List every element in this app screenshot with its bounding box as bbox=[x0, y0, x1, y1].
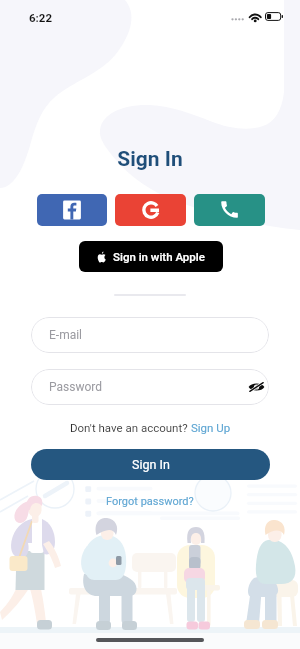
staticText: E-mail bbox=[49, 328, 83, 342]
staticText: Sign In bbox=[0, 147, 300, 172]
staticText: Sign In bbox=[132, 457, 170, 472]
staticText: 6:22 bbox=[29, 11, 53, 24]
button[interactable]: Sign Up bbox=[191, 421, 231, 434]
button[interactable]: Sign in with Apple bbox=[79, 241, 223, 272]
button[interactable]: Sign in with Facebook bbox=[37, 194, 107, 226]
staticText: Password bbox=[49, 380, 103, 394]
button[interactable]: Forgot password? bbox=[106, 495, 194, 508]
button[interactable]: Sign in with Google bbox=[115, 194, 186, 226]
staticText: Don't have an account? bbox=[70, 421, 191, 434]
button[interactable]: Sign In bbox=[31, 449, 270, 480]
button[interactable]: Sign in with phone bbox=[194, 194, 265, 226]
button[interactable]: Password bbox=[31, 369, 269, 405]
staticText: Sign in with Apple bbox=[113, 250, 205, 263]
button[interactable]: E-mail bbox=[31, 317, 269, 353]
button[interactable]: Show password bbox=[248, 381, 265, 393]
